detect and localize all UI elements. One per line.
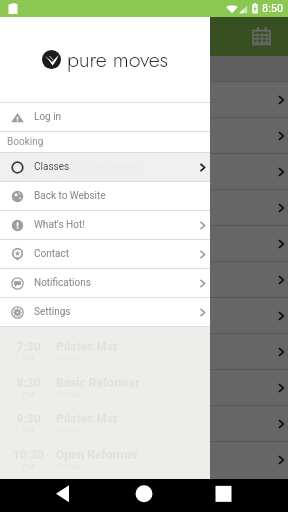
staticText: Settings: [34, 306, 71, 318]
button[interactable]: What's Hot!: [0, 211, 210, 239]
staticText: PM: [22, 282, 35, 291]
staticText: 9:00: [16, 160, 41, 174]
staticText: AM: [22, 246, 35, 255]
staticText: Laura: [56, 174, 76, 183]
staticText: Laura: [56, 210, 76, 219]
staticText: Basic Reformer: [56, 232, 140, 246]
staticText: Pilates Mat: [56, 412, 118, 426]
staticText: Pilates Mat: [56, 268, 118, 282]
staticText: Back to Website: [34, 190, 106, 202]
staticText: Laura: [56, 246, 76, 255]
staticText: 5:30: [16, 268, 41, 282]
staticText: Laura: [56, 174, 76, 183]
staticText: Pilates Mat: [56, 268, 118, 282]
button[interactable]: Recent apps: [192, 479, 288, 512]
staticText: Yvonne: [56, 282, 83, 291]
staticText: 10:30: [13, 232, 44, 246]
button[interactable]: Back: [0, 479, 96, 512]
staticText: 9:30: [16, 412, 41, 426]
staticText: AM: [22, 246, 35, 255]
staticText: Pilates Mat: [56, 124, 118, 138]
staticText: AM: [22, 102, 35, 111]
staticText: Notifications: [34, 277, 91, 289]
staticText: Pilates Mat: [56, 340, 118, 354]
staticText: Basic Reformer: [56, 376, 140, 390]
button[interactable]: Log in: [0, 103, 210, 131]
staticText: 6:30: [16, 304, 41, 318]
button[interactable]: 10:30: [0, 441, 288, 477]
staticText: 6:30: [16, 304, 41, 318]
button[interactable]: Settings: [0, 298, 210, 326]
staticText: Contact: [34, 248, 69, 260]
staticText: 10:30: [13, 232, 44, 246]
button[interactable]: Contact: [0, 240, 210, 268]
staticText: Pilates Mat: [56, 124, 118, 138]
staticText: 8:30: [16, 376, 41, 390]
staticText: Classes: [34, 161, 70, 173]
staticText: AM: [22, 138, 35, 147]
staticText: AM: [22, 174, 35, 183]
staticText: What's Hot!: [34, 219, 85, 231]
button[interactable]: 7:30: [0, 333, 288, 369]
button[interactable]: 8:30: [0, 369, 288, 405]
staticText: 9:30: [16, 412, 41, 426]
staticText: Pilates Mat: [56, 196, 118, 210]
staticText: AM: [22, 138, 35, 147]
button[interactable]: 5:30: [0, 261, 288, 297]
staticText: Basic Reformer: [56, 160, 140, 174]
staticText: AM: [22, 102, 35, 111]
staticText: 8:50: [262, 2, 284, 15]
staticText: Pilates Mat: [56, 340, 118, 354]
staticText: AM: [22, 174, 35, 183]
button[interactable]: 10:30: [0, 225, 288, 261]
button[interactable]: 6:30: [0, 297, 288, 333]
staticText: 9:00: [16, 160, 41, 174]
staticText: PM: [22, 318, 35, 327]
staticText: PM: [22, 282, 35, 291]
staticText: Laura: [56, 102, 76, 111]
staticText: Open Reformer: [56, 304, 139, 318]
button[interactable]: Back to Website: [0, 182, 210, 210]
button[interactable]: 7:00: [0, 81, 288, 117]
staticText: 8:00: [16, 124, 41, 138]
staticText: 9:30: [16, 196, 41, 210]
button[interactable]: 9:30: [0, 189, 288, 225]
button[interactable]: 8:00: [0, 117, 288, 153]
staticText: Basic Reformer: [56, 232, 140, 246]
button[interactable]: 9:30: [0, 405, 288, 441]
button[interactable]: Notifications: [0, 269, 210, 297]
staticText: 7:30: [16, 340, 41, 354]
button[interactable]: 9:00: [0, 153, 288, 189]
staticText: Laura: [56, 102, 76, 111]
staticText: Basic Reformer: [56, 160, 140, 174]
staticText: 9:30: [16, 196, 41, 210]
staticText: 8:00: [16, 124, 41, 138]
button[interactable]: Classes: [0, 153, 210, 181]
staticText: Yvonne: [56, 318, 83, 327]
staticText: 7:30: [16, 340, 41, 354]
staticText: Laura: [56, 246, 76, 255]
staticText: 5:30: [16, 268, 41, 282]
staticText: 8:30: [16, 376, 41, 390]
button[interactable]: Calendar: [251, 26, 272, 47]
button[interactable]: Home: [96, 479, 192, 512]
staticText: Yvonne: [56, 318, 83, 327]
staticText: Open Reformer: [56, 304, 139, 318]
staticText: Open Reformer: [56, 448, 139, 462]
